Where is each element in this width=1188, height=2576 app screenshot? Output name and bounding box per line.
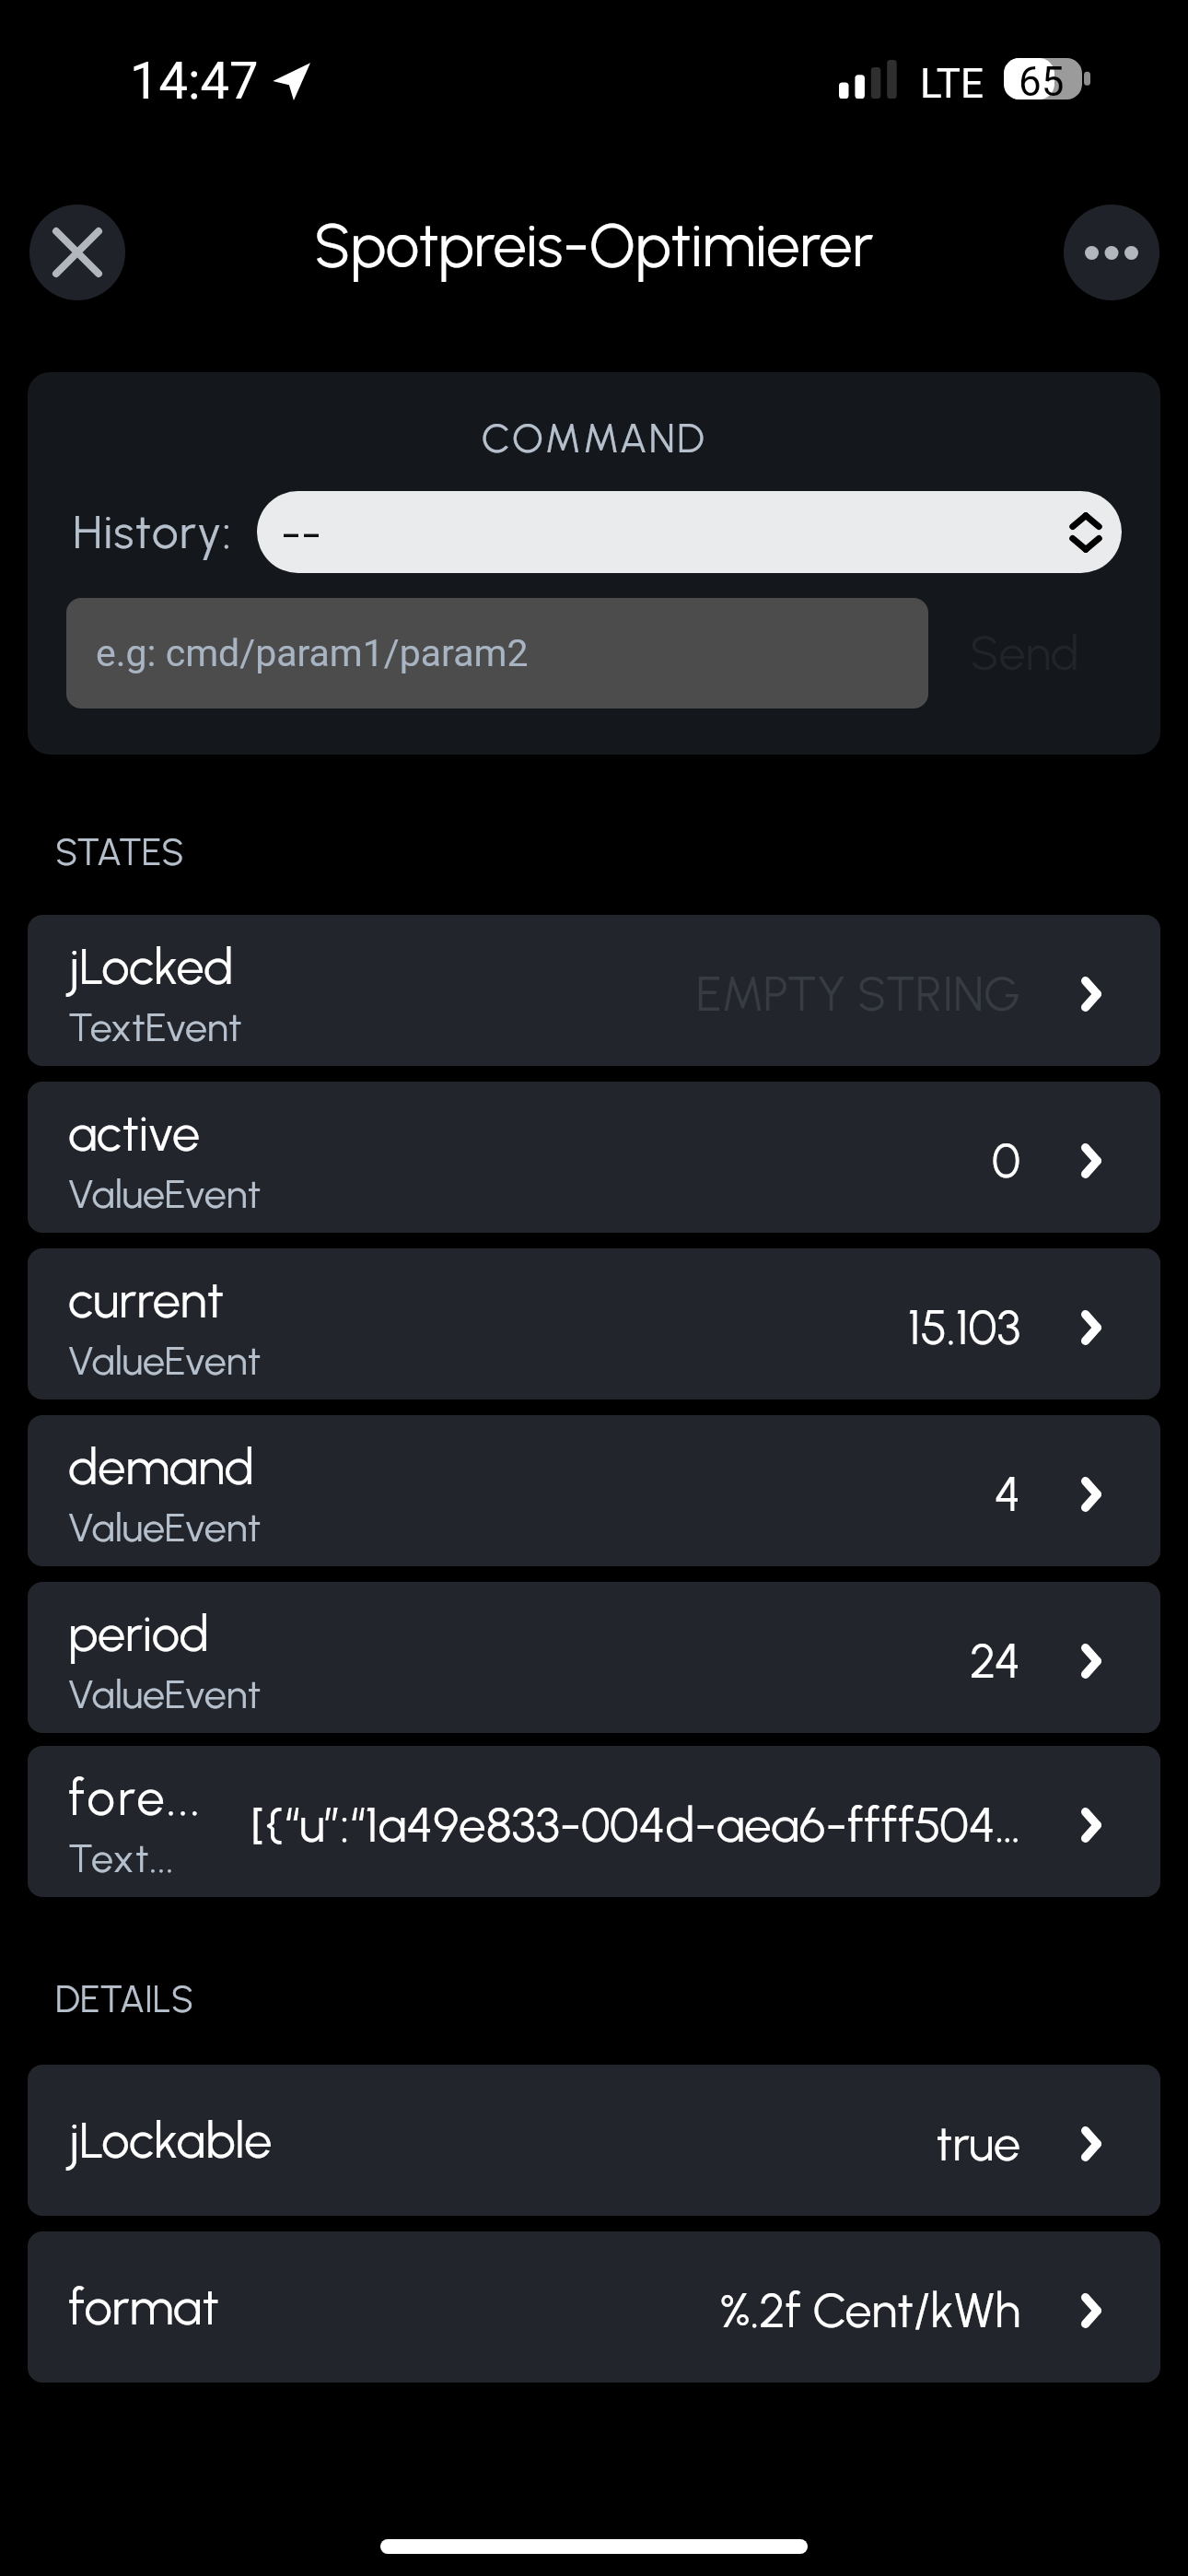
staticText: ValueEvent — [68, 1337, 262, 1385]
staticText: fore... — [68, 1768, 204, 1828]
staticText: -- — [281, 505, 322, 560]
staticText: 14:47 — [130, 51, 259, 111]
staticText: ValueEvent — [68, 1504, 262, 1551]
button[interactable]: jLockable — [28, 2065, 1160, 2216]
staticText: ValueEvent — [68, 1670, 262, 1718]
staticText: jLockable — [68, 2111, 273, 2171]
staticText: 4 — [372, 1466, 1020, 1523]
staticText: DETAILS — [55, 1977, 194, 2021]
staticText: current — [68, 1270, 225, 1330]
staticText: LTE — [920, 60, 984, 108]
staticText: TextEvent — [68, 1003, 242, 1051]
staticText: 65 — [1019, 58, 1065, 100]
staticText: Spotpreis-Optimierer — [314, 209, 874, 281]
button[interactable]: period — [28, 1582, 1160, 1733]
button[interactable]: Close — [29, 205, 125, 300]
staticText: EMPTY STRING — [372, 966, 1020, 1023]
staticText: format — [68, 2277, 219, 2337]
staticText: jLocked — [68, 937, 234, 997]
button[interactable]: Send — [928, 598, 1120, 708]
staticText: 24 — [372, 1633, 1020, 1690]
staticText: demand — [68, 1437, 254, 1497]
staticText: [{“u”:“1a49e833-004d-aea6-ffff504… — [238, 1796, 1020, 1855]
staticText: 0 — [372, 1132, 1020, 1189]
staticText: period — [68, 1604, 209, 1664]
staticText: %.2f Cent/kWh — [372, 2282, 1020, 2339]
button[interactable]: active — [28, 1082, 1160, 1233]
staticText: STATES — [55, 830, 184, 874]
button[interactable]: format — [28, 2231, 1160, 2383]
staticText: active — [68, 1104, 201, 1164]
staticText: COMMAND — [28, 414, 1160, 463]
staticText: e.g: cmd/param1/param2 — [96, 631, 529, 675]
staticText: 15.103 — [372, 1299, 1020, 1356]
staticText: History: — [73, 504, 233, 560]
staticText: true — [372, 2115, 1020, 2172]
button[interactable]: jLocked — [28, 915, 1160, 1066]
button[interactable]: -- — [257, 491, 1122, 573]
button[interactable]: More options — [1064, 205, 1159, 300]
button[interactable]: current — [28, 1248, 1160, 1399]
button[interactable]: demand — [28, 1415, 1160, 1566]
button[interactable]: e.g: cmd/param1/param2 — [66, 598, 928, 708]
staticText: ValueEvent — [68, 1170, 262, 1218]
button[interactable]: fore... — [28, 1746, 1160, 1897]
staticText: Text... — [68, 1834, 175, 1882]
staticText: Send — [970, 625, 1079, 682]
